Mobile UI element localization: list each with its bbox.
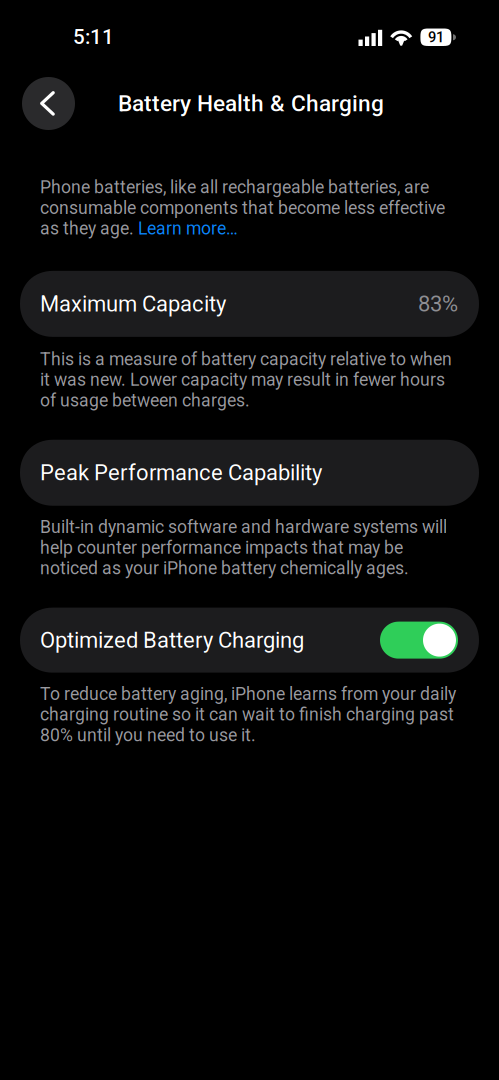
button[interactable]: Optimized Battery Charging [20, 608, 479, 673]
staticText: Phone batteries, like all rechargeable b… [40, 177, 445, 239]
staticText: Battery Health & Charging [118, 90, 384, 117]
staticText: Built-in dynamic software and hardware s… [40, 517, 447, 579]
staticText: Maximum Capacity [40, 291, 226, 317]
staticText: 5:11 [73, 25, 114, 49]
button[interactable]: Back [22, 77, 75, 130]
staticText: 83% [418, 291, 458, 317]
button[interactable]: Peak Performance Capability [20, 440, 479, 506]
staticText: This is a measure of battery capacity re… [40, 349, 452, 411]
staticText: Peak Performance Capability [40, 460, 322, 486]
button[interactable]: Maximum Capacity [20, 271, 479, 337]
staticText: To reduce battery aging, iPhone learns f… [40, 684, 456, 745]
staticText: 91 [428, 29, 444, 46]
staticText: Optimized Battery Charging [40, 627, 304, 653]
